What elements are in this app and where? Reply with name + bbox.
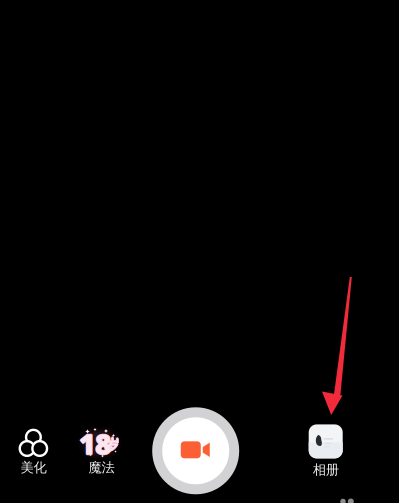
staticText: 18: [78, 425, 110, 462]
staticText: 18: [79, 425, 111, 462]
staticText: 岁: [104, 435, 119, 453]
staticText: 岁: [105, 436, 120, 454]
button[interactable]: 相册: [298, 424, 354, 481]
staticText: 魔法: [88, 459, 114, 476]
button[interactable]: 18: [73, 429, 129, 477]
button[interactable]: Record video: [152, 407, 239, 494]
staticText: 岁: [104, 436, 119, 454]
staticText: 相册: [313, 462, 339, 478]
staticText: 岁: [104, 436, 119, 454]
button[interactable]: 美化: [5, 429, 61, 477]
staticText: 18: [79, 424, 111, 461]
staticText: 美化: [20, 459, 46, 476]
staticText: 18: [79, 426, 111, 463]
staticText: 18: [80, 425, 112, 462]
staticText: 岁: [104, 437, 119, 455]
